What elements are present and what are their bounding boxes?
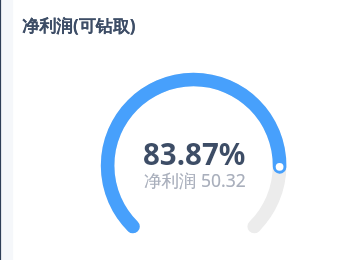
staticText: 83.87% [143, 133, 246, 173]
staticText: 净利润 50.32 [144, 168, 246, 192]
button[interactable] [132, 130, 256, 192]
other: Net profit gauge, 83.87 percent [0, 0, 359, 260]
button[interactable]: 净利润(可钻取) [22, 14, 136, 37]
staticText: 净利润(可钻取) [22, 14, 136, 37]
staticText: 净利润(可钻取) [22, 14, 136, 37]
